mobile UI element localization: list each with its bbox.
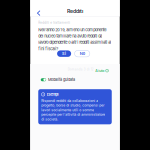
staticText: Rispondi redditi da collaborazioni a pro… bbox=[41, 99, 105, 121]
staticText: Redditi bbox=[67, 8, 83, 14]
staticText: No bbox=[80, 51, 85, 56]
staticText: Esempi bbox=[46, 92, 58, 97]
staticText: Sì bbox=[62, 51, 66, 56]
button[interactable]: Aiuto bbox=[95, 69, 109, 73]
button[interactable]: Back bbox=[34, 9, 43, 18]
button[interactable]: Modalità guidata bbox=[41, 78, 46, 81]
staticText: Modalità guidata bbox=[48, 78, 75, 82]
staticText: Domanda 3 di 12 bbox=[68, 68, 94, 71]
staticText: Redditi e trattamenti bbox=[38, 21, 70, 24]
button[interactable]: No bbox=[74, 50, 90, 57]
staticText: Nell'anno 2019, almeno un componente del… bbox=[38, 27, 111, 51]
staticText: Aiuto bbox=[95, 69, 104, 73]
button[interactable]: Sì bbox=[57, 50, 71, 57]
